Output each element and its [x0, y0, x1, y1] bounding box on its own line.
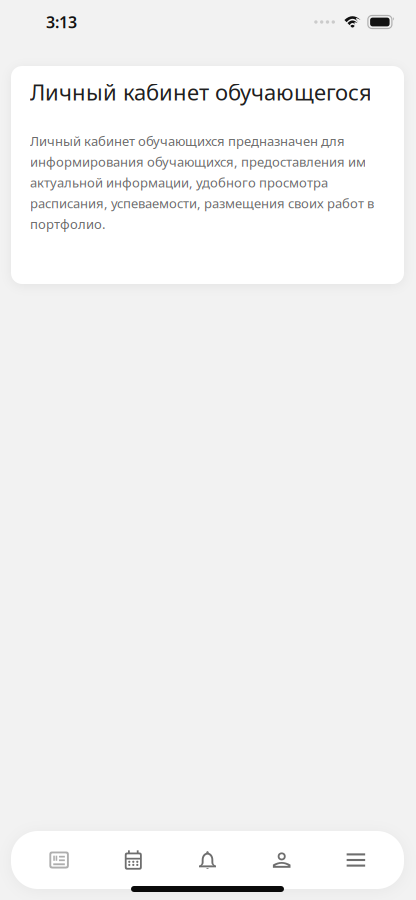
- staticText: Личный кабинет обучающегося: [30, 77, 372, 107]
- staticText: 3:13: [46, 11, 77, 33]
- staticText: Личный кабинет обучающихся предназначен …: [30, 132, 374, 233]
- button[interactable]: Расписание: [96, 831, 170, 889]
- button[interactable]: Меню: [319, 831, 393, 889]
- button[interactable]: Уведомления: [170, 831, 245, 889]
- button[interactable]: Новости: [22, 831, 96, 889]
- button[interactable]: Профиль: [245, 831, 319, 889]
